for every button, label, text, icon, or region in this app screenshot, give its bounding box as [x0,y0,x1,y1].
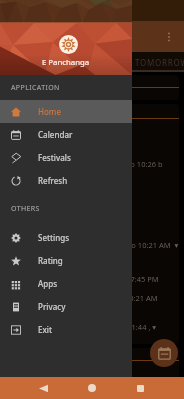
button[interactable]: YESTERDAY [0,52,74,72]
button[interactable]: More options [158,26,180,48]
staticText: APPLICATION [11,83,60,93]
button[interactable]: Home [0,100,132,123]
button[interactable]: TOMORROW [132,52,184,72]
staticText: Apps [38,278,58,289]
button[interactable]: Exit [0,318,132,341]
staticText: Settings [38,232,70,243]
button[interactable]: Home [79,377,105,399]
staticText: YESTERDAY [13,57,62,68]
staticText: Karana Taitila Karana valid upto 10:21 A… [10,293,158,303]
button[interactable]: Privacy [0,295,132,318]
button[interactable]: Calendar [0,123,132,146]
staticText: TODAY [88,57,118,68]
button[interactable]: Tithi Shukla Paksha Dwadashi upto 10:26 … [4,104,179,344]
button[interactable]: Settings [0,226,132,249]
button[interactable] [4,348,179,392]
staticText: Home [38,106,62,117]
button[interactable]: Festivals [0,146,132,169]
staticText: Privacy [38,301,66,312]
staticText: Chandra Rashi Kumbha starts at 01:44 , ▾ [10,322,157,332]
button[interactable] [4,75,179,100]
staticText: E Panchanga [42,57,90,68]
staticText: Yoga Siddha Yoga ends today at 07:45 PM [10,274,159,284]
button[interactable]: Recents [127,377,153,399]
staticText: TOMORROW [135,57,184,68]
button[interactable]: TODAY [74,52,132,72]
button[interactable]: Pick date [150,339,178,367]
staticText: Refresh [38,175,68,186]
staticText: Exit [38,324,53,335]
staticText: Rating [38,255,63,266]
staticText: Nakshatra Uttara Bhadrapada upto 10:21 A… [10,240,179,250]
button[interactable]: Apps [0,272,132,295]
button[interactable]: Rating [0,249,132,272]
button[interactable]: Refresh [0,169,132,192]
button[interactable]: Back [30,377,56,399]
staticText: Calendar [38,129,73,140]
staticText: OTHERS [11,204,40,214]
staticText: Festivals [38,152,71,163]
staticText: Tithi Shukla Paksha Dwadashi upto 10:26 … [10,159,163,169]
